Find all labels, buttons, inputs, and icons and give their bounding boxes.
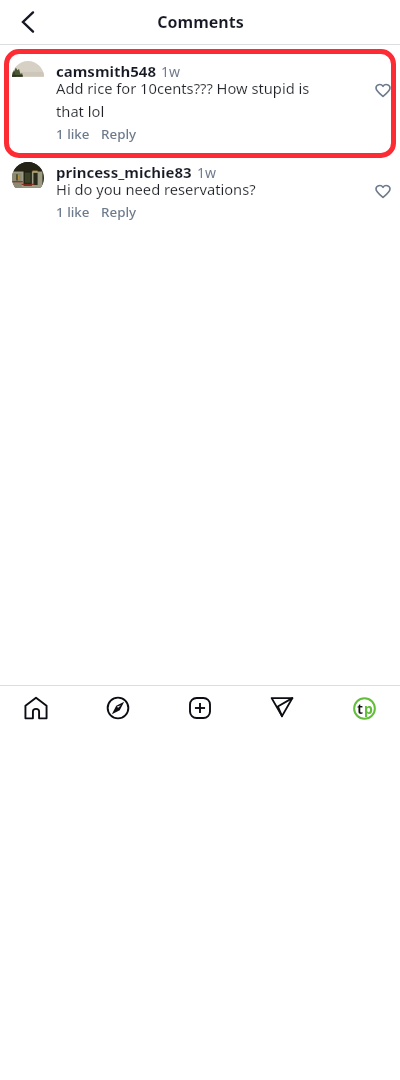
button[interactable]: Reply xyxy=(101,125,137,143)
button[interactable]: princess_michie83 xyxy=(0,162,400,221)
button[interactable]: Like xyxy=(376,83,390,97)
button[interactable]: Home xyxy=(13,685,59,731)
staticText: 1w xyxy=(197,163,217,182)
button[interactable]: 1 like xyxy=(56,203,90,221)
button[interactable]: Profile xyxy=(341,685,387,731)
staticText: Add rice for 10cents??? How stupid is th… xyxy=(56,78,312,121)
button[interactable]: Reply xyxy=(101,203,137,221)
staticText: Reply xyxy=(101,203,137,221)
button[interactable]: 1 like xyxy=(56,125,90,143)
button[interactable]: camsmith548 xyxy=(0,61,400,143)
staticText: camsmith548 xyxy=(56,61,156,81)
staticText: 1w xyxy=(161,62,181,81)
staticText: 1 like xyxy=(56,125,90,143)
button[interactable]: Direct messages xyxy=(259,685,305,731)
staticText: t xyxy=(357,699,364,718)
button[interactable]: Back xyxy=(10,5,44,39)
button[interactable]: Explore xyxy=(95,685,141,731)
staticText: Comments xyxy=(157,11,244,33)
staticText: Reply xyxy=(101,125,137,143)
button[interactable]: Create xyxy=(177,685,223,731)
button[interactable]: Like xyxy=(376,184,390,198)
staticText: 1 like xyxy=(56,203,90,221)
staticText: Hi do you need reservations? xyxy=(56,179,256,199)
staticText: p xyxy=(364,699,373,718)
staticText: princess_michie83 xyxy=(56,162,192,182)
